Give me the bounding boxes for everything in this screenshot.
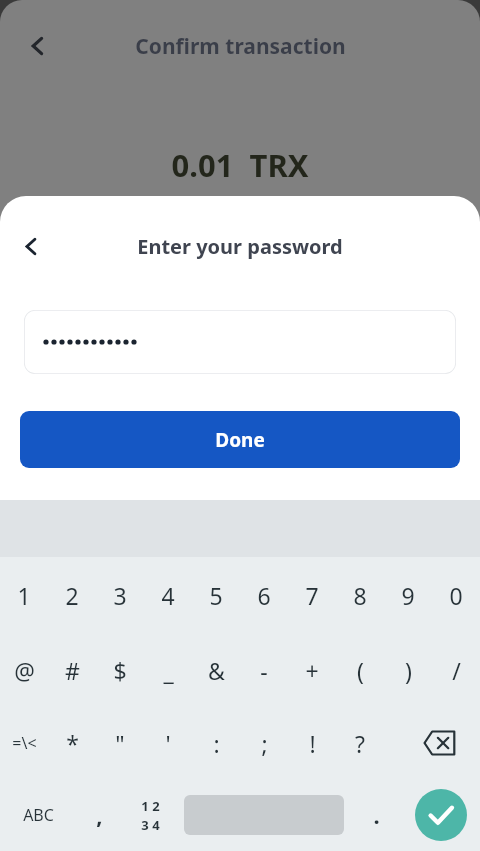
button[interactable]: 3 [96,557,144,633]
staticText: ' [165,728,171,759]
staticText: 2 [65,580,79,611]
button[interactable]: , [76,779,122,851]
staticText: , [96,800,103,830]
button[interactable]: ! [288,707,336,779]
button[interactable]: ABC [0,779,76,851]
button[interactable]: / [432,633,480,707]
button[interactable]: Backspace [384,707,480,779]
button[interactable]: 1 [0,557,48,633]
button[interactable]: 9 [384,557,432,633]
button[interactable]: ' [144,707,192,779]
staticText: _ [163,655,174,686]
button[interactable]: Done [20,411,460,468]
staticText: Confirm transaction [135,32,346,61]
staticText: 3 4 [141,816,160,834]
button[interactable]: ? [336,707,384,779]
staticText: # [65,655,80,686]
staticText: . [373,800,380,830]
button[interactable] [24,310,456,374]
button[interactable]: 8 [336,557,384,633]
button[interactable]: . [350,779,402,851]
staticText: =\< [12,732,37,754]
button[interactable]: _ [144,633,192,707]
staticText: " [115,728,125,759]
button[interactable]: 0 [432,557,480,633]
button[interactable]: ; [240,707,288,779]
button[interactable]: + [288,633,336,707]
staticText: ! [309,728,316,759]
button[interactable]: Numbers [122,779,178,851]
staticText: : [213,728,220,759]
staticText: 0 [449,580,463,611]
staticText: ( [357,655,364,686]
staticText: 1 2 [141,797,160,815]
staticText: ? [355,728,365,759]
button[interactable]: ( [336,633,384,707]
button[interactable]: $ [96,633,144,707]
staticText: + [305,655,319,686]
staticText: 3 [113,580,127,611]
button[interactable]: ) [384,633,432,707]
staticText: 8 [353,580,367,611]
staticText: $ [113,655,127,686]
staticText: 4 [161,580,175,611]
button[interactable]: " [96,707,144,779]
staticText: ; [261,728,268,759]
staticText: & [208,655,225,686]
staticText: 5 [209,580,223,611]
button[interactable]: 6 [240,557,288,633]
staticText: ) [405,655,412,686]
button[interactable]: =\< [0,707,48,779]
staticText: 1 [17,580,31,611]
staticText: 9 [401,580,415,611]
button[interactable]: : [192,707,240,779]
button[interactable]: & [192,633,240,707]
staticText: 6 [257,580,271,611]
staticText: ABC [23,804,54,826]
staticText: 7 [305,580,319,611]
staticText: 0.01 TRX [171,144,309,186]
button[interactable]: 5 [192,557,240,633]
staticText: Enter your password [137,233,343,260]
staticText: * [66,728,79,759]
button[interactable]: Back [8,223,54,269]
staticText: - [260,655,268,686]
button[interactable]: * [48,707,96,779]
staticText: / [452,655,461,686]
button[interactable]: 4 [144,557,192,633]
button[interactable]: @ [0,633,48,707]
button[interactable]: Back [14,22,62,70]
staticText: Done [215,427,265,453]
button[interactable]: Enter [402,779,480,851]
staticText: @ [14,655,35,686]
button[interactable]: 2 [48,557,96,633]
button[interactable]: - [240,633,288,707]
button[interactable]: 7 [288,557,336,633]
button[interactable]: # [48,633,96,707]
